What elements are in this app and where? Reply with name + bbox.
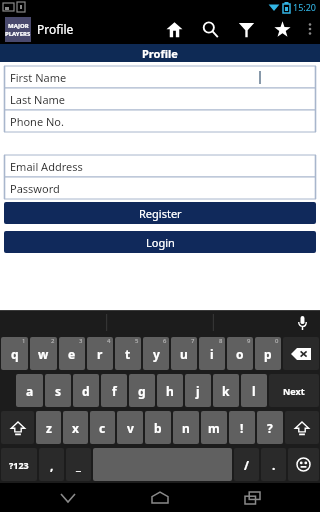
staticText: Profile: [142, 46, 178, 61]
button[interactable]: !: [229, 411, 255, 444]
button[interactable]: k: [213, 374, 239, 407]
button[interactable]: _: [66, 448, 91, 481]
staticText: m: [208, 420, 220, 436]
staticText: p: [264, 346, 272, 362]
button[interactable]: Login: [4, 231, 316, 253]
button[interactable]: v: [117, 411, 143, 444]
button[interactable]: r: [87, 337, 113, 370]
button[interactable]: a: [16, 374, 43, 407]
button[interactable]: e: [59, 337, 85, 370]
button[interactable]: ?: [257, 411, 283, 444]
button[interactable]: f: [101, 374, 127, 407]
button[interactable]: c: [90, 411, 115, 444]
staticText: f: [112, 383, 117, 399]
button[interactable]: j: [185, 374, 211, 407]
staticText: Email Address: [10, 159, 83, 174]
button[interactable]: m: [201, 411, 227, 444]
button[interactable]: Phone No.: [4, 110, 316, 132]
button[interactable]: Favourites: [264, 14, 300, 44]
button[interactable]: Email Address: [4, 155, 316, 177]
staticText: k: [222, 383, 230, 399]
button[interactable]: ,: [39, 448, 64, 481]
staticText: d: [82, 383, 90, 399]
staticText: Register: [139, 206, 182, 221]
button[interactable]: /: [234, 448, 259, 481]
staticText: Next: [283, 385, 305, 397]
staticText: 2: [51, 337, 55, 345]
staticText: Password: [10, 181, 60, 196]
staticText: z: [46, 420, 52, 436]
staticText: ?: [267, 420, 273, 436]
button[interactable]: Recent apps: [228, 483, 276, 512]
staticText: s: [55, 383, 62, 399]
button[interactable]: Filter: [228, 14, 264, 44]
staticText: 0: [275, 337, 279, 345]
button[interactable]: Delete: [283, 337, 319, 370]
staticText: t: [125, 346, 131, 362]
button[interactable]: Shift: [1, 411, 34, 444]
button[interactable]: .: [261, 448, 286, 481]
staticText: Login: [146, 235, 175, 250]
staticText: b: [154, 420, 162, 436]
staticText: .: [272, 457, 276, 473]
staticText: n: [182, 420, 190, 436]
button[interactable]: o: [227, 337, 253, 370]
staticText: u: [180, 346, 188, 362]
button[interactable]: Emoji: [288, 448, 319, 481]
staticText: 9: [247, 337, 251, 345]
staticText: 7: [191, 337, 195, 345]
staticText: r: [97, 346, 103, 362]
button[interactable]: Next: [269, 374, 319, 407]
button[interactable]: ?123: [1, 448, 37, 481]
staticText: /: [244, 457, 249, 473]
button[interactable]: g: [129, 374, 155, 407]
button[interactable]: y: [143, 337, 169, 370]
staticText: o: [236, 346, 244, 362]
button[interactable]: u: [171, 337, 197, 370]
staticText: MAJOR: [8, 22, 29, 30]
button[interactable]: q: [1, 337, 28, 370]
button[interactable]: w: [30, 337, 57, 370]
button[interactable]: d: [73, 374, 99, 407]
staticText: c: [99, 420, 106, 436]
button[interactable]: Home: [156, 14, 192, 44]
button[interactable]: t: [115, 337, 141, 370]
button[interactable]: Search: [192, 14, 228, 44]
button[interactable]: s: [45, 374, 71, 407]
button[interactable]: First Name: [4, 66, 316, 88]
staticText: ?123: [9, 459, 29, 471]
button[interactable]: Last Name: [4, 88, 316, 110]
staticText: 5: [135, 337, 139, 345]
button[interactable]: Register: [4, 202, 316, 224]
staticText: e: [68, 346, 76, 362]
staticText: ,: [50, 457, 54, 473]
button[interactable]: z: [36, 411, 61, 444]
button[interactable]: Home: [136, 483, 184, 512]
button[interactable]: Hide keyboard: [44, 483, 92, 512]
button[interactable]: l: [241, 374, 267, 407]
button[interactable]: h: [157, 374, 183, 407]
staticText: Phone No.: [10, 114, 64, 129]
staticText: 8: [219, 337, 223, 345]
staticText: 4: [107, 337, 111, 345]
staticText: 15:20: [293, 1, 317, 13]
staticText: a: [26, 383, 34, 399]
button[interactable]: p: [255, 337, 281, 370]
staticText: g: [138, 383, 146, 399]
staticText: 3: [79, 337, 83, 345]
staticText: 6: [163, 337, 167, 345]
button[interactable]: Shift: [285, 411, 319, 444]
button[interactable]: n: [173, 411, 199, 444]
staticText: w: [38, 346, 49, 362]
staticText: q: [11, 346, 19, 362]
button[interactable]: x: [63, 411, 88, 444]
button[interactable]: b: [145, 411, 171, 444]
button[interactable]: More options: [300, 14, 320, 44]
button[interactable]: i: [199, 337, 225, 370]
staticText: x: [72, 420, 79, 436]
staticText: _: [76, 457, 81, 473]
button[interactable]: Voice input: [292, 313, 312, 333]
button[interactable]: Password: [4, 177, 316, 199]
staticText: i: [210, 346, 214, 362]
